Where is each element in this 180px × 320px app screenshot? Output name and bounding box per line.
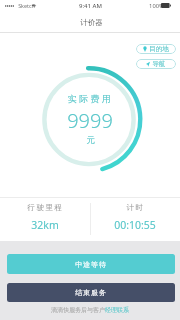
staticText: 结束服务 [75,288,107,297]
staticText: 100% [149,2,164,10]
staticText: 9999 [67,107,113,134]
button[interactable]: 目的地 [136,44,176,54]
staticText: 32km [31,218,59,232]
staticText: 中途等待 [75,260,107,269]
staticText: 目的地 [149,45,169,53]
staticText: 计时 [126,203,145,212]
button[interactable]: 经理联系 [105,306,129,314]
staticText: 滴滴快服务后与客户 [51,306,105,314]
staticText: 00:10:55 [114,218,156,232]
staticText: Sketch [18,2,35,9]
staticText: 实际费用 [68,93,113,104]
staticText: 行驶里程 [27,203,64,212]
button[interactable]: 结束服务 [7,283,175,302]
button[interactable]: 导航 [136,59,176,69]
button[interactable]: 中途等待 [7,254,175,274]
staticText: 经理联系 [105,306,129,314]
staticText: 元 [86,135,95,146]
staticText: 9:41 AM [79,2,102,10]
staticText: 计价器 [80,18,103,27]
staticText: 导航 [152,60,166,68]
